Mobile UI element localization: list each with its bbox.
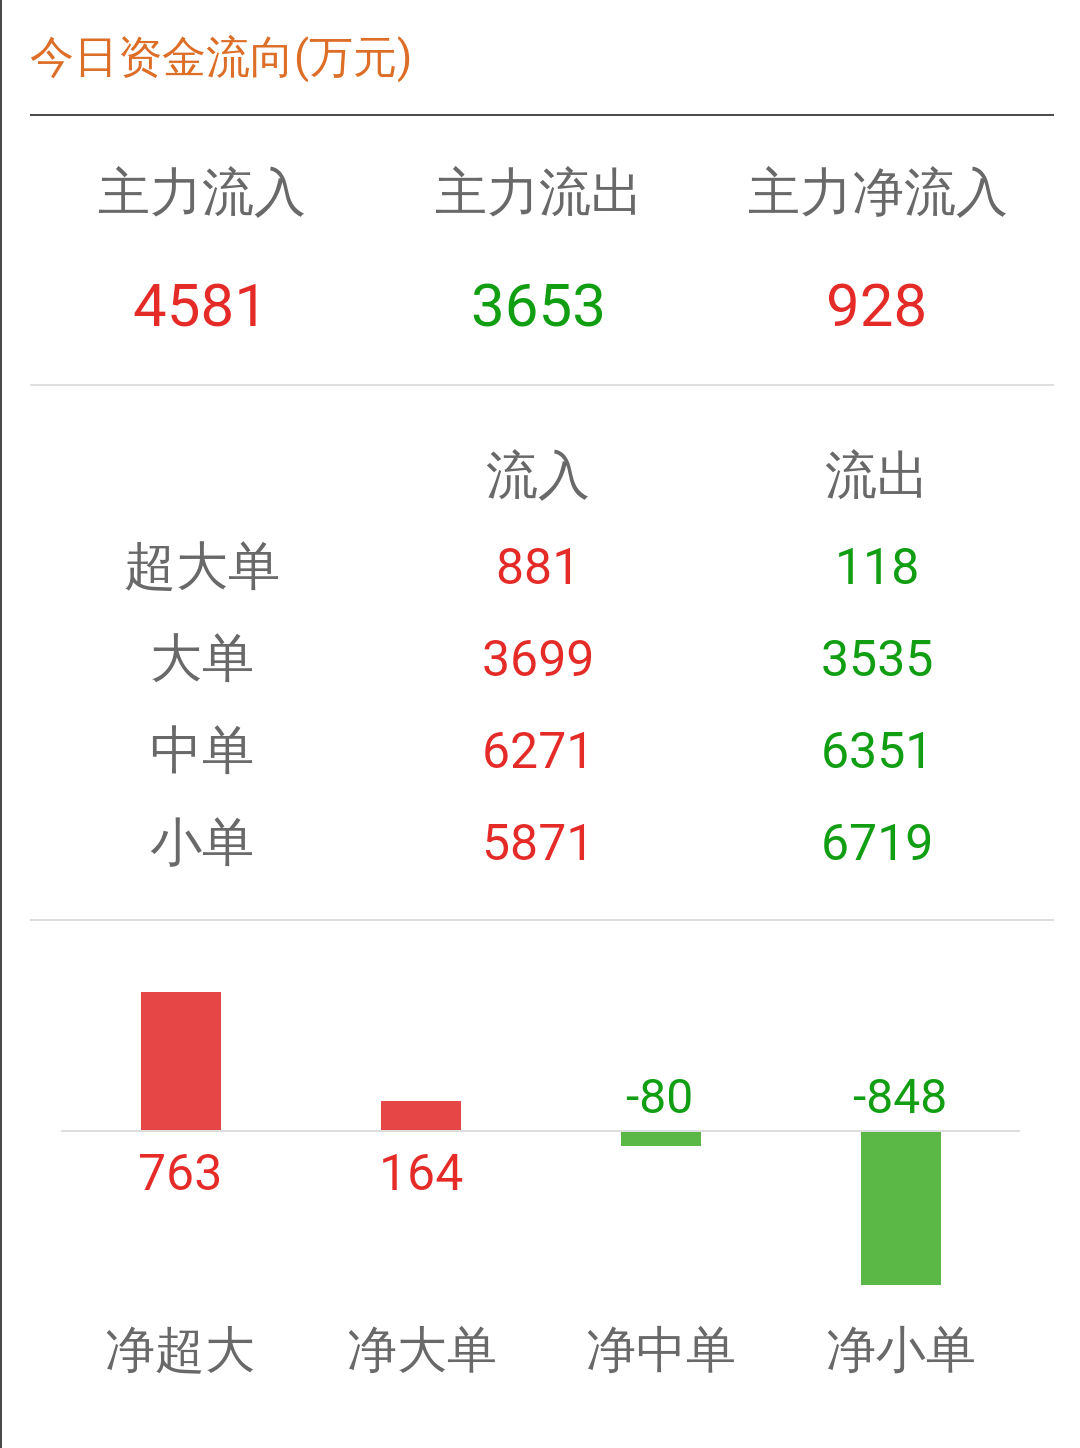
staticText: 3699 [482, 630, 595, 689]
staticText: 主力流入 [98, 160, 306, 226]
staticText: 164 [379, 1144, 464, 1203]
staticText: 流入 [486, 443, 590, 509]
staticText: -80 [626, 1068, 694, 1124]
staticText: 881 [496, 538, 581, 597]
staticText: 净中单 [586, 1319, 736, 1382]
staticText: 净小单 [826, 1319, 976, 1382]
staticText: 大单 [150, 626, 254, 692]
staticText: 928 [826, 270, 928, 340]
staticText: 主力净流入 [748, 160, 1008, 226]
staticText: -848 [853, 1068, 948, 1124]
staticText: 今日资金流向(万元) [30, 30, 413, 85]
staticText: 763 [138, 1144, 223, 1203]
staticText: 超大单 [124, 534, 280, 600]
staticText: 6719 [821, 814, 934, 873]
staticText: 小单 [150, 810, 254, 876]
staticText: 3535 [821, 630, 934, 689]
staticText: 流出 [825, 443, 929, 509]
staticText: 中单 [150, 718, 254, 784]
staticText: 净大单 [347, 1319, 497, 1382]
staticText: 118 [835, 538, 920, 597]
staticText: 主力流出 [435, 160, 643, 226]
staticText: 6351 [821, 722, 934, 781]
staticText: 4581 [133, 270, 268, 340]
staticText: 5871 [482, 814, 595, 873]
staticText: 净超大 [105, 1319, 255, 1382]
staticText: 3653 [471, 270, 606, 340]
staticText: 6271 [482, 722, 595, 781]
